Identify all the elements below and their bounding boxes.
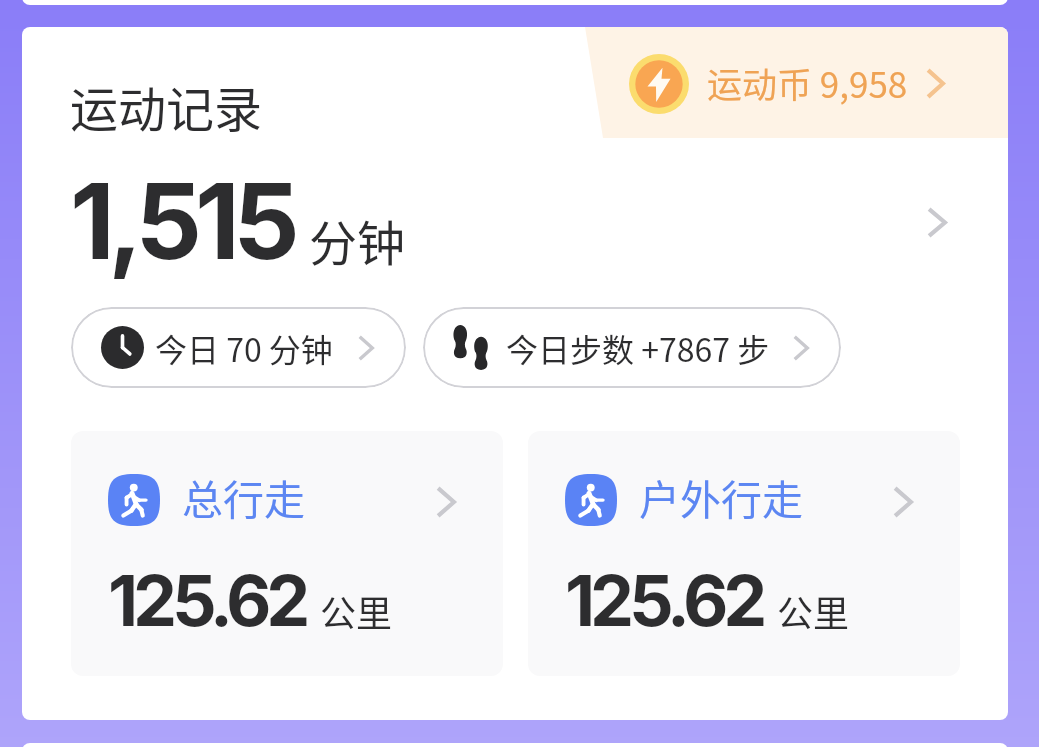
button[interactable]: 总行走: [419, 475, 473, 529]
staticText: 分钟: [309, 205, 406, 275]
button[interactable]: 户外行走: [528, 431, 960, 676]
staticText: 今日 70 分钟: [155, 325, 333, 371]
button[interactable]: 今日 70 分钟: [71, 307, 406, 388]
staticText: 公里: [777, 585, 850, 637]
staticText: 运动币 9,958: [707, 57, 908, 108]
button[interactable]: 户外行走: [876, 475, 930, 529]
button[interactable]: 运动币 9,958: [563, 27, 1008, 138]
staticText: 今日步数 +7867 步: [506, 325, 770, 371]
staticText: 1,515: [70, 158, 293, 284]
button[interactable]: 今日步数 +7867 步: [423, 307, 841, 388]
button[interactable]: 总行走: [71, 431, 503, 676]
staticText: 125.62: [565, 558, 763, 643]
staticText: 公里: [320, 585, 393, 637]
staticText: 户外行走: [639, 467, 803, 526]
button[interactable]: 运动记录 1,515 分钟: [48, 157, 982, 292]
staticText: 总行走: [182, 467, 305, 526]
staticText: 125.62: [108, 558, 306, 643]
staticText: 运动记录: [70, 71, 263, 141]
